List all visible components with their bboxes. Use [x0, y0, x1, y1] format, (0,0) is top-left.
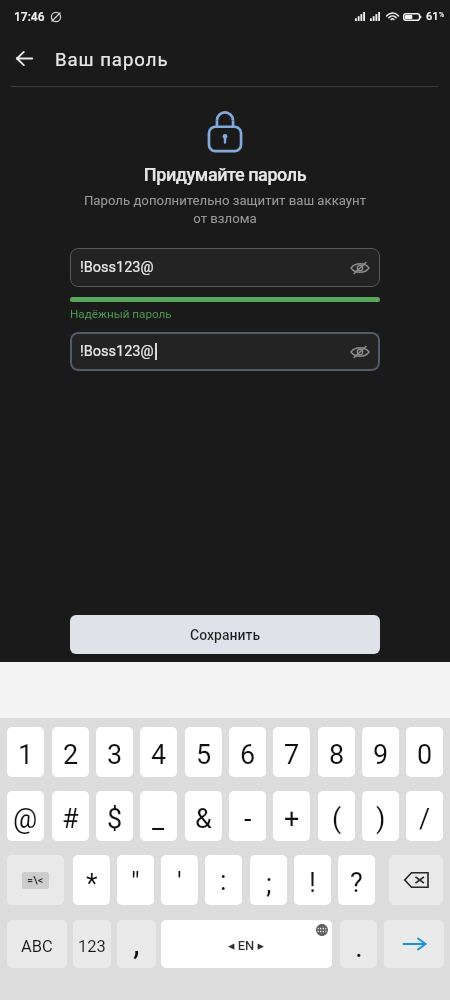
button[interactable]: .	[340, 920, 377, 968]
staticText: 123	[78, 937, 106, 956]
button[interactable]: 2	[52, 727, 89, 777]
button[interactable]: ,	[117, 920, 156, 968]
staticText: "	[131, 867, 140, 899]
staticText: &	[195, 803, 212, 835]
staticText: +	[284, 803, 300, 835]
staticText: !	[309, 867, 316, 899]
button[interactable]: 0	[406, 727, 443, 777]
staticText: :	[220, 865, 227, 897]
button[interactable]: _	[140, 791, 177, 841]
staticText: /	[419, 803, 431, 835]
button[interactable]: )	[362, 791, 399, 841]
staticText: 0	[417, 739, 433, 771]
staticText: ,	[133, 923, 140, 963]
button[interactable]: !	[294, 855, 331, 905]
staticText: #	[62, 803, 79, 835]
staticText: -	[244, 803, 252, 835]
button[interactable]: +	[273, 791, 310, 841]
staticText: Сохранить	[190, 627, 261, 643]
staticText: 3	[107, 739, 123, 771]
staticText: $	[107, 803, 123, 835]
other: Enter	[402, 935, 427, 953]
staticText: ABC	[21, 937, 53, 956]
button[interactable]: $	[96, 791, 133, 841]
staticText: .	[355, 929, 363, 964]
button[interactable]: ABC	[7, 920, 67, 968]
staticText: 8	[329, 739, 345, 771]
staticText: 61	[426, 10, 439, 23]
button[interactable]: -	[229, 791, 266, 841]
button[interactable]: 9	[362, 727, 399, 777]
button[interactable]: '	[161, 855, 198, 905]
staticText: _	[152, 803, 165, 835]
staticText: (	[332, 803, 342, 835]
staticText: *	[86, 868, 98, 900]
button[interactable]: "	[117, 855, 154, 905]
button[interactable]: !Boss123@	[70, 248, 380, 287]
button[interactable]: ◂ EN ▸	[161, 920, 332, 968]
button[interactable]: Backspace	[389, 855, 443, 905]
staticText: =\<	[27, 874, 44, 887]
button[interactable]: 8	[318, 727, 355, 777]
staticText: ;	[266, 868, 272, 900]
button[interactable]: 4	[140, 727, 177, 777]
button[interactable]: (	[318, 791, 355, 841]
staticText: Придумайте пароль	[0, 164, 450, 185]
button[interactable]: 123	[73, 920, 111, 968]
staticText: 17:46	[14, 10, 45, 24]
staticText: 7	[284, 739, 300, 771]
staticText: 6	[240, 739, 256, 771]
button[interactable]: @	[7, 791, 44, 841]
button[interactable]: ;	[250, 855, 287, 905]
staticText: ?	[350, 867, 363, 899]
staticText: 4	[151, 739, 167, 771]
button[interactable]: Back	[8, 40, 40, 77]
other: Backspace	[404, 871, 429, 889]
button[interactable]: Show password	[340, 248, 380, 287]
staticText: 2	[63, 739, 79, 771]
staticText: 5	[196, 739, 212, 771]
button[interactable]: Show password	[340, 332, 380, 371]
button[interactable]: Сохранить	[70, 615, 380, 654]
button[interactable]: *	[73, 855, 110, 905]
button[interactable]: =\<	[7, 855, 64, 905]
staticText: ◂ EN ▸	[228, 938, 265, 953]
staticText: Ваш пароль	[55, 49, 169, 71]
staticText: @	[13, 803, 38, 835]
button[interactable]: !Boss123@	[70, 332, 380, 371]
button[interactable]: /	[406, 791, 443, 841]
staticText: Надёжный пароль	[70, 307, 172, 321]
button[interactable]: 5	[185, 727, 222, 777]
staticText: )	[376, 803, 386, 835]
button[interactable]: Enter	[384, 920, 444, 968]
staticText: 1	[18, 739, 34, 771]
staticText: 9	[373, 739, 389, 771]
button[interactable]: 3	[96, 727, 133, 777]
button[interactable]: &	[185, 791, 222, 841]
staticText: !Boss123@	[80, 343, 154, 360]
staticText: Пароль дополнительно защитит ваш аккаунт…	[20, 193, 430, 226]
button[interactable]: 7	[273, 727, 310, 777]
button[interactable]: 1	[7, 727, 44, 777]
button[interactable]: :	[205, 855, 242, 905]
button[interactable]: #	[52, 791, 89, 841]
staticText: %	[439, 11, 445, 19]
button[interactable]: ?	[338, 855, 375, 905]
staticText: !Boss123@	[80, 259, 154, 276]
staticText: '	[177, 867, 182, 899]
button[interactable]: 6	[229, 727, 266, 777]
